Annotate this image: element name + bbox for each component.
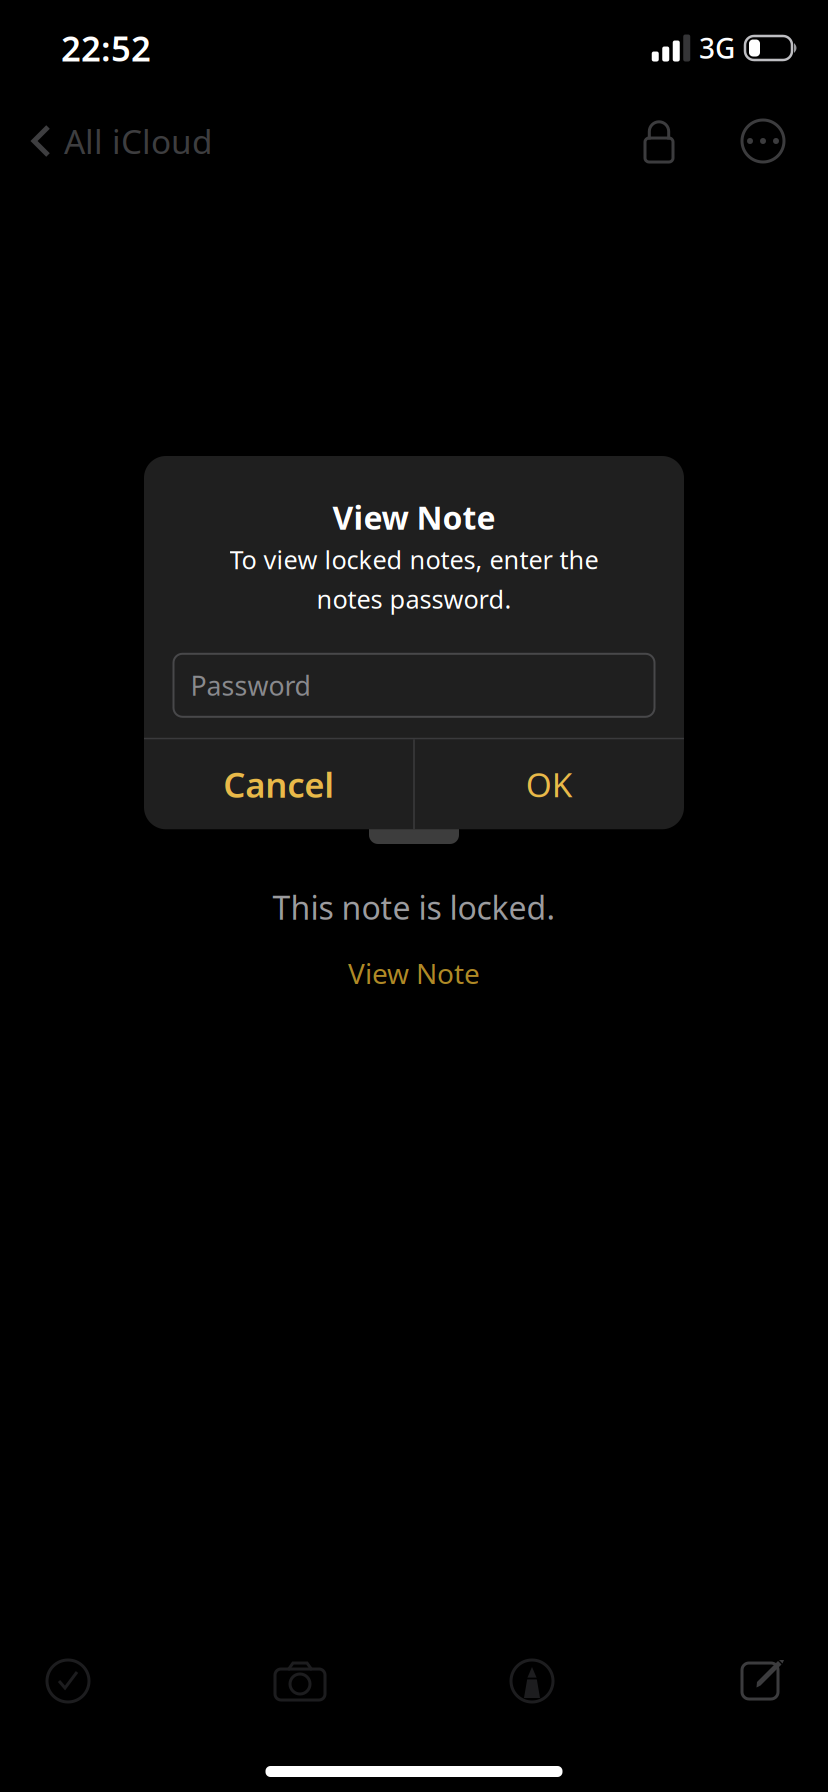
staticText: To view locked notes, enter the [229, 542, 598, 576]
staticText: This note is locked. [272, 886, 555, 928]
staticText: Cancel [223, 761, 334, 807]
button[interactable]: Camera [236, 1645, 364, 1717]
button[interactable]: Checklist [4, 1645, 132, 1717]
button[interactable]: OK [415, 739, 684, 829]
button[interactable]: More [716, 96, 810, 186]
staticText: 22:52 [61, 25, 151, 71]
button[interactable]: Markup [468, 1645, 596, 1717]
staticText: OK [526, 762, 573, 806]
button[interactable]: View Note [318, 928, 510, 1004]
button[interactable]: Lock Note [602, 96, 716, 186]
staticText: 3G [699, 29, 735, 67]
staticText: All iCloud [64, 119, 213, 163]
button[interactable]: All iCloud [6, 96, 231, 186]
staticText: notes password. [316, 582, 511, 616]
staticText: View Note [348, 954, 480, 992]
button[interactable]: Cancel [144, 739, 413, 829]
staticText: Password [190, 668, 310, 703]
button[interactable]: New Note [700, 1645, 828, 1717]
staticText: View Note [332, 496, 495, 538]
